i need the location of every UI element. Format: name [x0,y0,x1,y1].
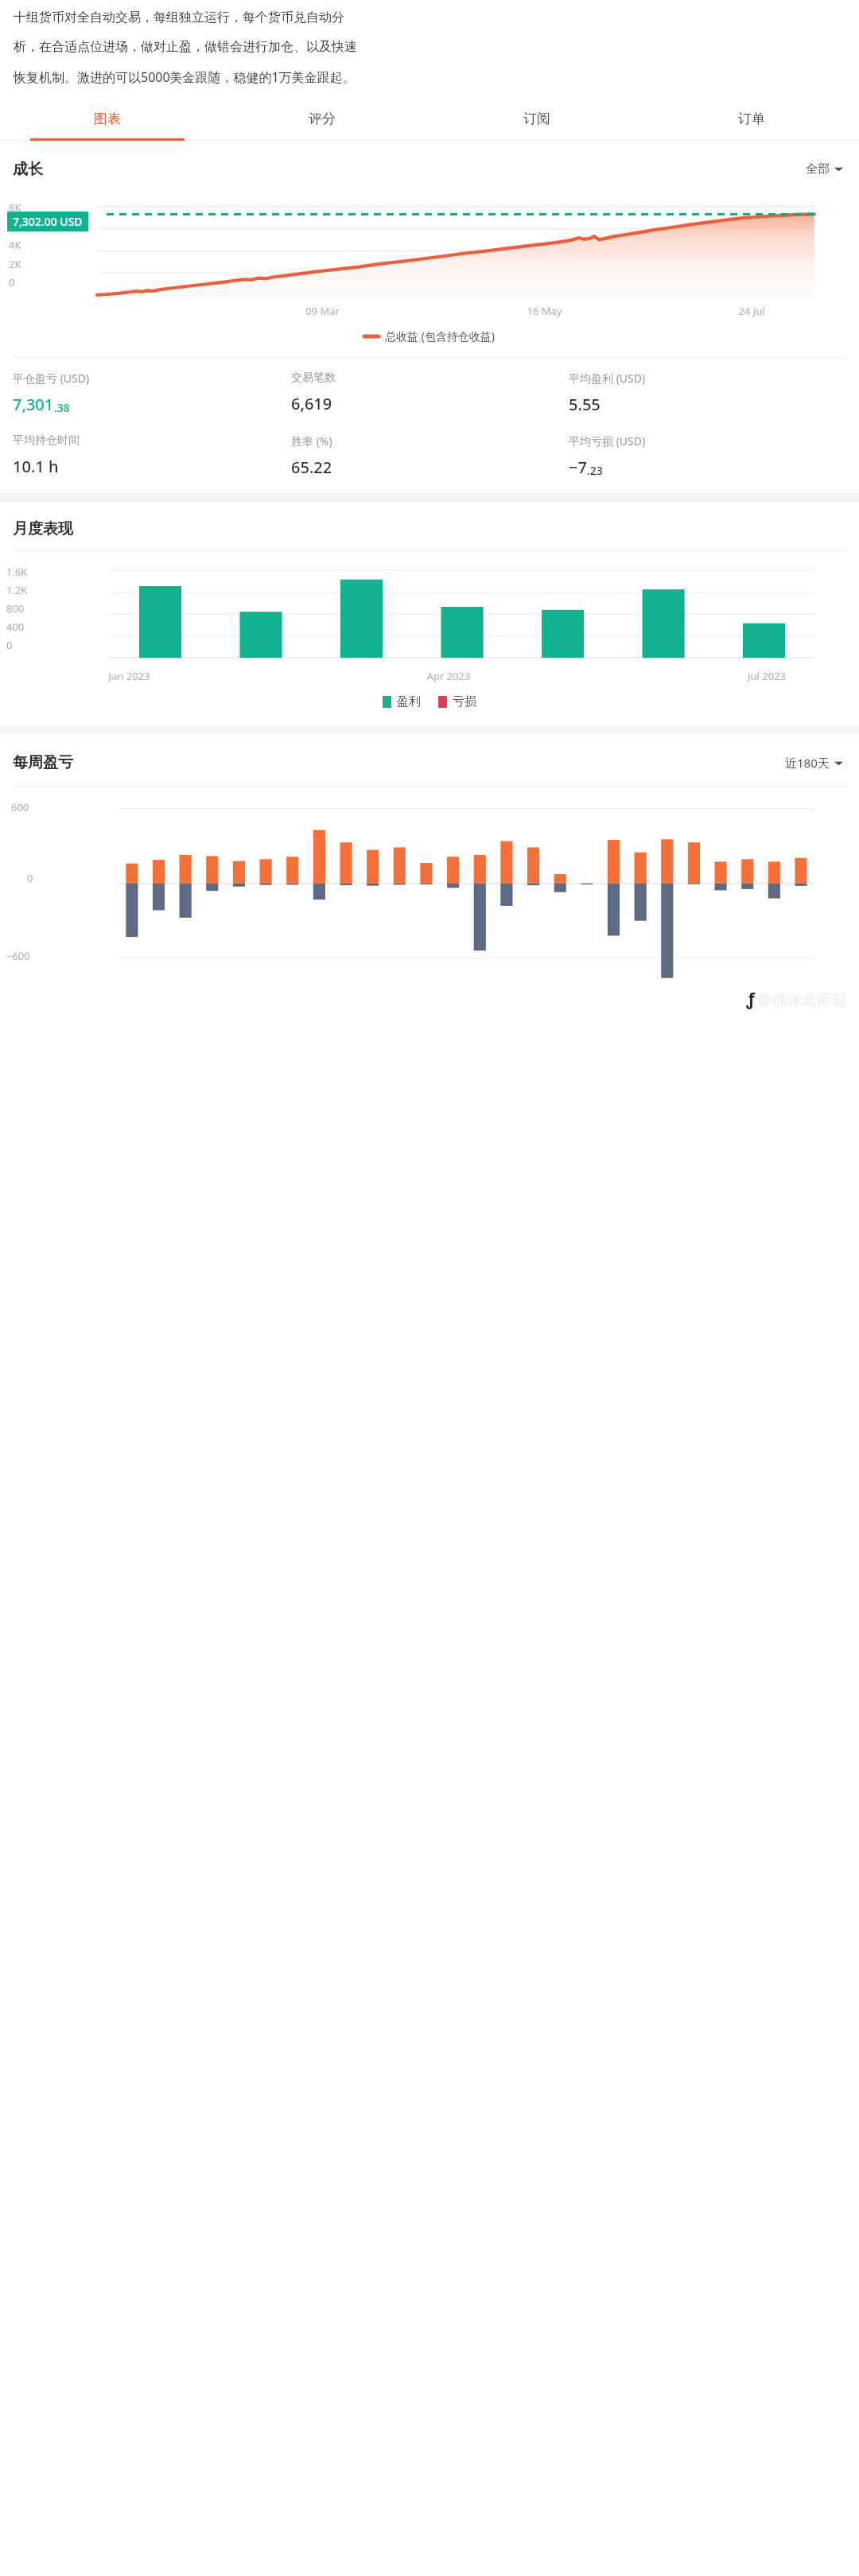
staticText: 亏损 [453,694,476,709]
staticText: 图表 [94,111,121,127]
staticText: 0 [27,871,33,885]
button[interactable]: 评分 [215,99,429,138]
staticText: ƒ [746,988,755,1011]
staticText: 平仓盈亏 (USD) [13,371,90,386]
staticText: 十组货币对全自动交易，每组独立运行，每个货币兑自动分 [14,10,344,25]
other: Filter [834,759,843,767]
staticText: .23 [587,463,603,478]
other: Filter [834,165,843,173]
staticText: 24 Jul [655,304,848,318]
staticText: 平均亏损 (USD) [569,433,646,449]
button[interactable]: 全部 [803,158,846,180]
button[interactable]: 近180天 [782,752,846,774]
staticText: 5.55 [569,394,601,415]
button[interactable]: 订阅 [429,99,644,138]
staticText: 成长 [13,160,43,179]
staticText: −600 [6,949,30,963]
staticText: 月度表现 [13,519,73,538]
staticText: 总收益 (包含持仓收益) [385,328,496,344]
staticText: 析，在合适点位进场，做对止盈，做错会进行加仓、以及快速 [14,39,357,55]
staticText: 平均盈利 (USD) [569,371,646,386]
staticText: 盈利 [397,694,421,709]
staticText: 16 May [433,304,655,318]
staticText: 10.1 h [13,456,59,477]
staticText: 600 [11,800,29,814]
staticText: @猫咪老师斑 [758,989,848,1010]
staticText: 6,619 [291,393,332,414]
staticText: 平均持仓时间 [13,433,80,448]
button[interactable]: 图表 [0,99,215,138]
staticText: 全部 [806,161,830,177]
staticText: 800 [6,601,25,616]
staticText: 2K [9,257,21,271]
staticText: 1.2K [6,583,28,597]
staticText: 4K [9,238,21,252]
staticText: Jul 2023 [687,669,846,683]
staticText: 7,302.00 USD [13,214,83,229]
staticText: 0 [9,275,15,289]
staticText: 09 Mar [212,304,433,318]
button[interactable]: 订单 [644,99,859,138]
staticText: Apr 2023 [369,669,528,683]
staticText: 交易笔数 [291,371,336,385]
staticText: 每周盈亏 [13,753,73,772]
staticText: 恢复机制。激进的可以5000美金跟随，稳健的1万美金跟起。 [14,68,356,86]
staticText: 1.6K [6,565,28,579]
staticText: 7,301 [13,394,54,415]
staticText: 近180天 [785,755,830,771]
staticText: 0 [6,638,13,652]
staticText: Jan 2023 [49,669,209,683]
staticText: 评分 [309,111,336,127]
staticText: 400 [6,620,25,634]
staticText: 65.22 [291,457,332,478]
staticText: 订单 [738,111,765,127]
staticText: 胜率 (%) [291,433,332,449]
staticText: .38 [54,400,70,415]
staticText: 8K [9,200,21,215]
staticText: 6K [9,220,21,234]
staticText: −7 [569,457,587,478]
staticText: 订阅 [523,111,550,127]
